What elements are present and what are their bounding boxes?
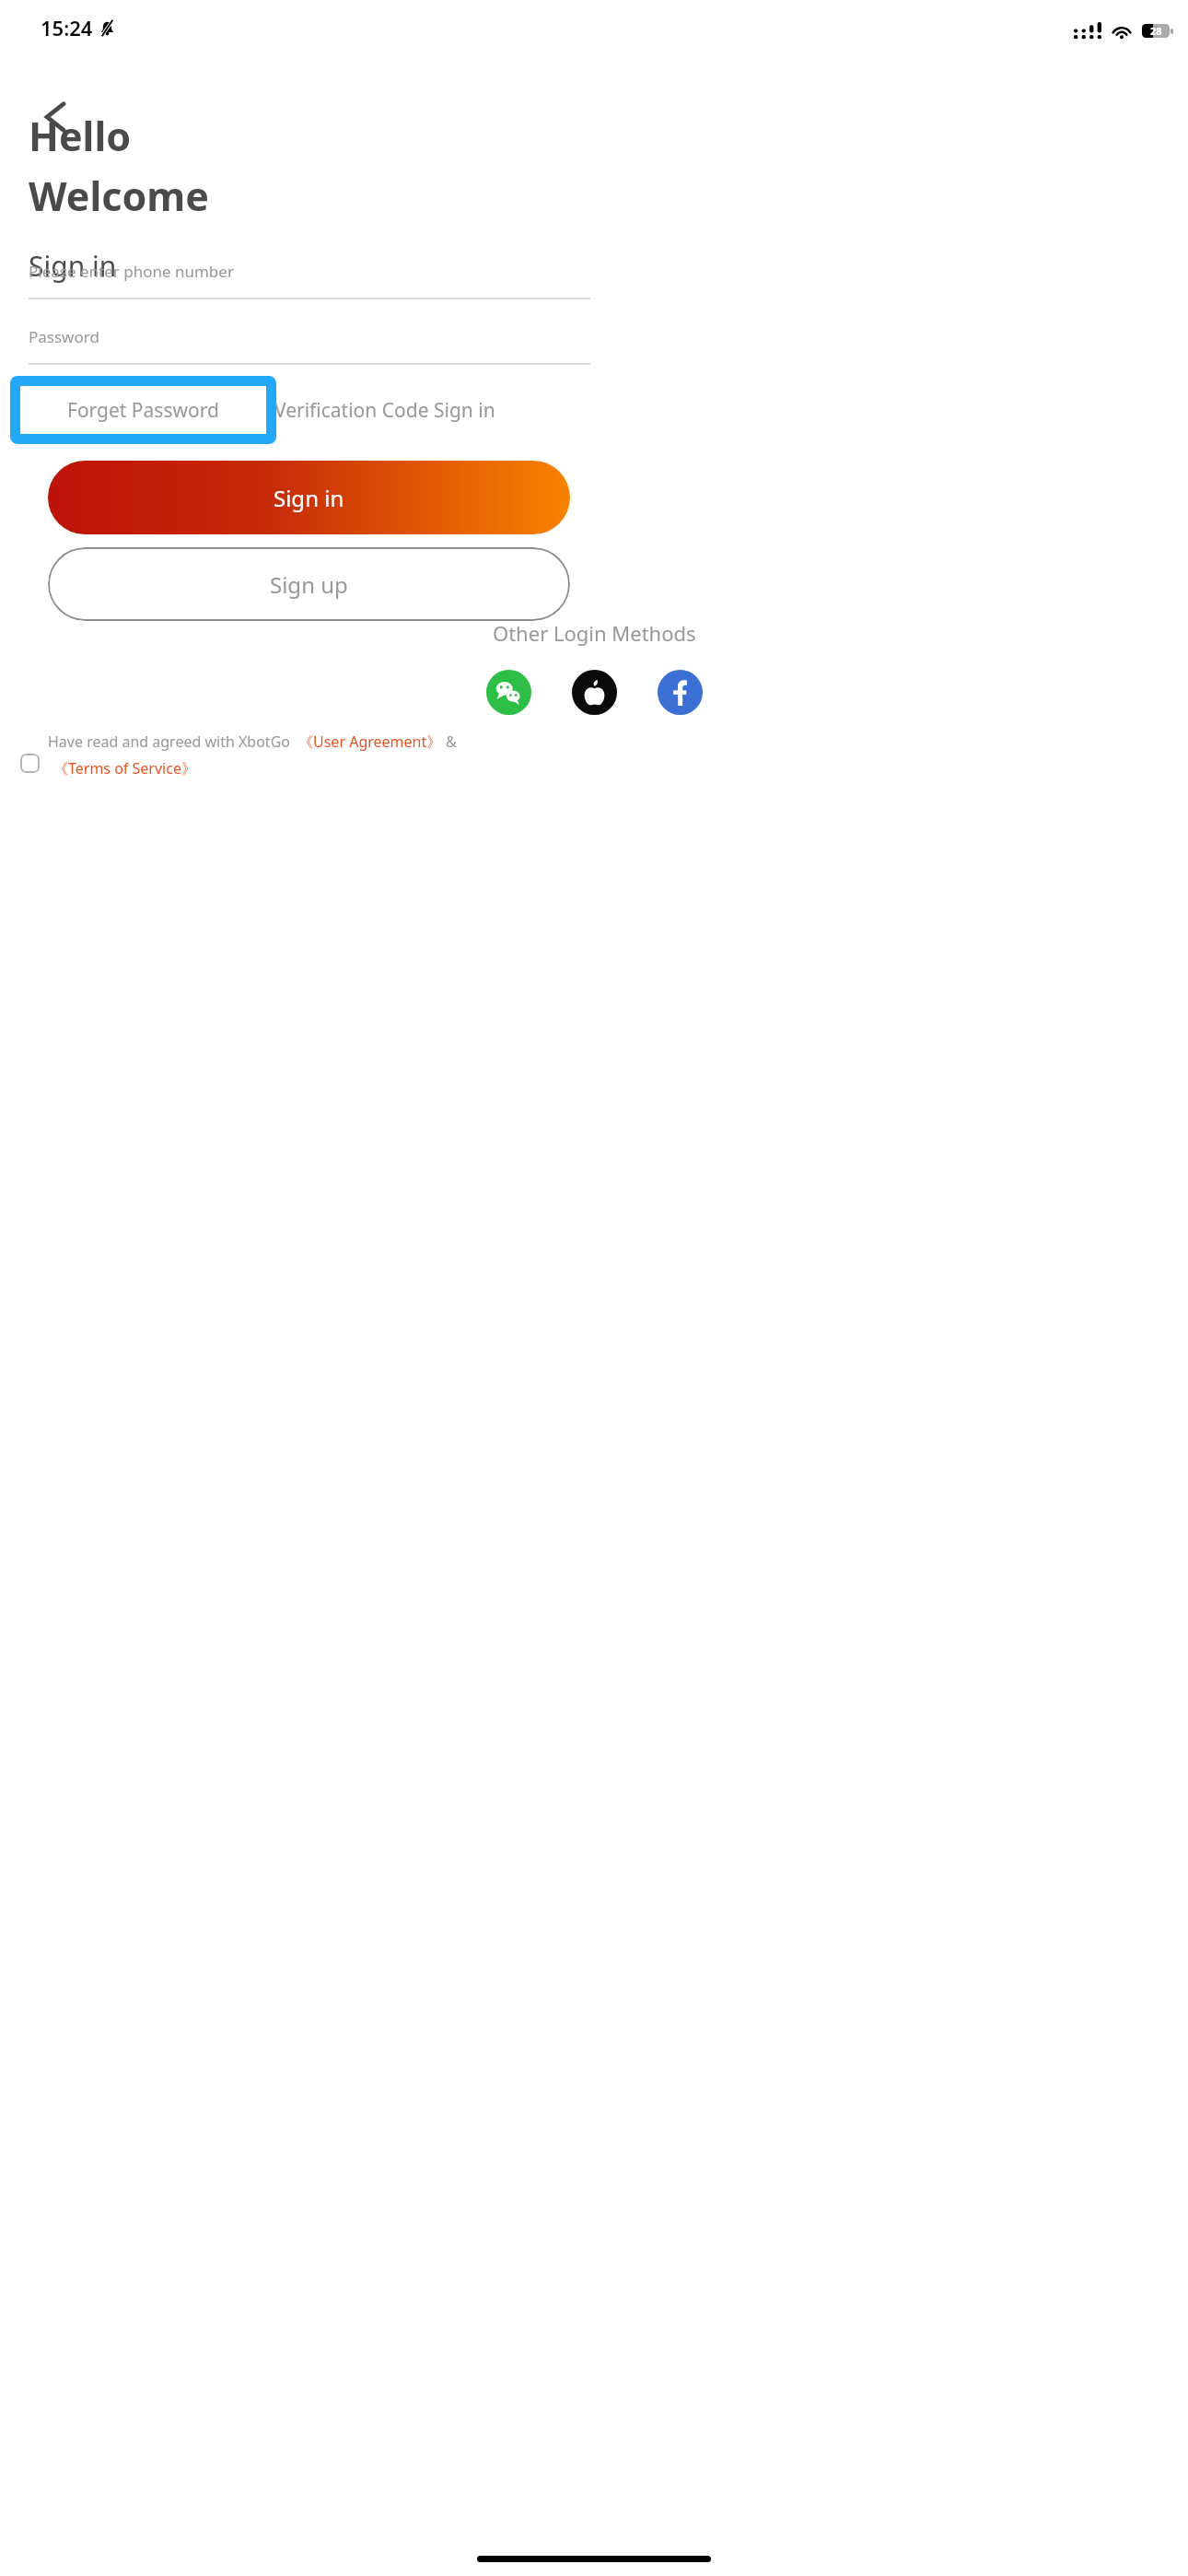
staticText: Please enter phone number — [29, 261, 234, 282]
staticText: Sign in — [274, 483, 344, 513]
button[interactable]: Sign in with Facebook — [658, 670, 703, 715]
button[interactable]: 《User Agreement》 — [298, 732, 442, 752]
staticText: 《User Agreement》 — [298, 732, 442, 752]
staticText: Sign in — [29, 247, 117, 285]
button[interactable]: Forget Password — [10, 376, 276, 444]
staticText: Verification Code Sign in — [274, 397, 495, 424]
button[interactable]: Verification Code Sign in — [274, 376, 495, 444]
staticText: Password — [29, 326, 99, 347]
staticText: Hello — [29, 109, 132, 163]
button[interactable]: Sign in with WeChat — [486, 670, 531, 715]
button[interactable]: Sign up — [48, 547, 570, 621]
staticText: Sign up — [270, 569, 348, 600]
staticText: Other Login Methods — [493, 619, 696, 647]
button[interactable]: Password — [29, 320, 397, 353]
button[interactable]: Sign in with Apple — [572, 670, 617, 715]
staticText: Have read and agreed with XbotGo — [48, 732, 290, 752]
staticText: Forget Password — [67, 397, 219, 424]
button[interactable]: Sign in — [48, 461, 570, 534]
staticText: Welcome — [29, 169, 209, 223]
button[interactable]: Please enter phone number — [29, 254, 397, 287]
button[interactable]: Agree to user agreement and terms — [13, 746, 46, 779]
staticText: 28 — [1150, 24, 1162, 38]
button[interactable]: Back — [28, 88, 85, 146]
button[interactable]: 《Terms of Service》 — [53, 758, 196, 779]
staticText: & — [446, 732, 457, 752]
staticText: 15:24 — [41, 14, 93, 41]
staticText: 《Terms of Service》 — [53, 758, 196, 779]
